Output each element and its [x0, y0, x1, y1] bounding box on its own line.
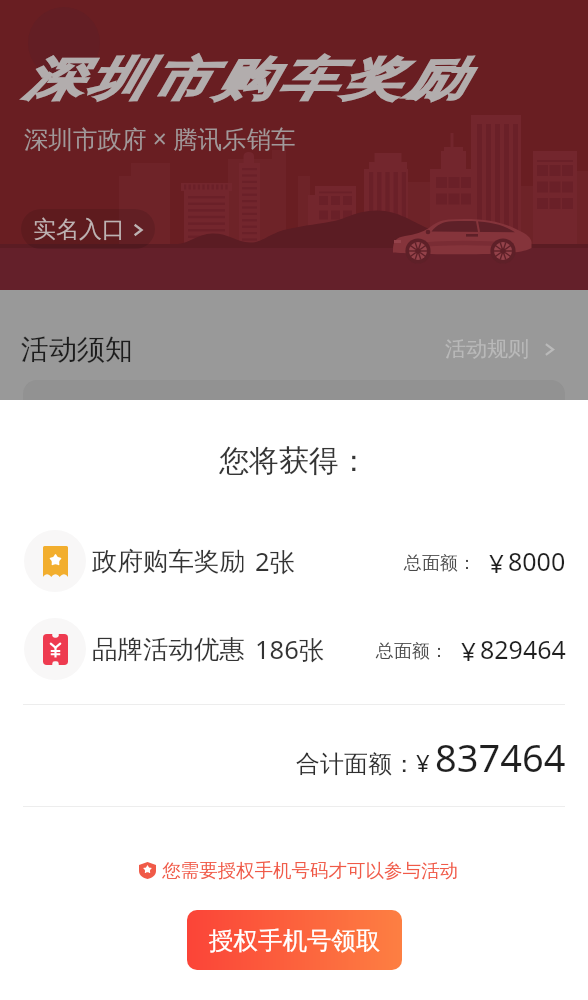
button[interactable]: 授权手机号领取	[187, 910, 402, 970]
staticText: 186张	[255, 632, 325, 667]
staticText: 总面额：	[404, 552, 476, 575]
staticText: 您需要授权手机号码才可以参与活动	[162, 859, 458, 882]
staticText: 总面额：	[376, 640, 448, 663]
staticText: 政府购车奖励	[92, 545, 245, 577]
staticText: 合计面额：	[296, 749, 416, 779]
staticText: 活动规则	[445, 336, 529, 362]
button[interactable]: 活动规则	[445, 336, 556, 362]
staticText: 深圳市政府 × 腾讯乐销车	[24, 122, 296, 155]
staticText: 授权手机号领取	[209, 925, 381, 956]
staticText: 品牌活动优惠	[92, 633, 245, 665]
staticText: 8000	[508, 544, 566, 578]
staticText: ¥	[416, 746, 430, 779]
staticText: 实名入口	[33, 215, 125, 244]
staticText: 2张	[255, 544, 296, 579]
staticText: 深圳市购车奖励	[20, 51, 466, 109]
staticText: 837464	[435, 731, 566, 783]
button[interactable]: 实名入口	[21, 209, 155, 249]
staticText: ¥	[489, 545, 504, 580]
staticText: 829464	[480, 632, 566, 666]
staticText: 您将获得：	[0, 442, 588, 480]
staticText: ¥	[461, 633, 476, 668]
staticText: 活动须知	[21, 332, 133, 367]
